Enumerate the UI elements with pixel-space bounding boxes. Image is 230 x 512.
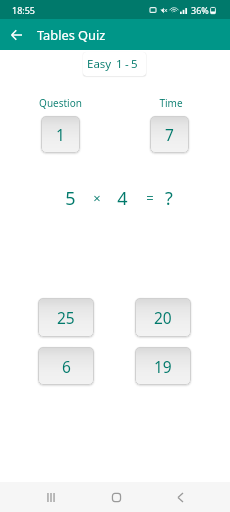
staticText: 1 xyxy=(116,56,123,72)
button[interactable]: Easy xyxy=(83,52,146,76)
staticText: 1 xyxy=(56,124,65,145)
staticText: 19 xyxy=(154,356,172,377)
staticText: Tables Quiz xyxy=(37,26,106,43)
button[interactable]: Recents xyxy=(27,482,75,512)
staticText: Question xyxy=(39,96,82,110)
button[interactable]: Back xyxy=(0,19,32,50)
button[interactable]: 20 xyxy=(135,298,191,337)
button[interactable]: Back xyxy=(156,482,204,512)
staticText: × xyxy=(93,189,101,207)
staticText: 18:55 xyxy=(12,4,36,16)
button[interactable]: 25 xyxy=(38,298,94,337)
button[interactable]: 19 xyxy=(135,347,191,385)
staticText: 5 xyxy=(131,56,138,72)
button[interactable]: 6 xyxy=(38,347,94,385)
button[interactable]: Home xyxy=(92,482,140,512)
staticText: - xyxy=(125,56,129,72)
staticText: Easy xyxy=(87,56,112,72)
staticText: 7 xyxy=(165,124,174,145)
staticText: 36% xyxy=(191,4,209,16)
staticText: 6 xyxy=(62,356,71,377)
staticText: 25 xyxy=(57,307,75,328)
staticText: ? xyxy=(165,186,173,211)
staticText: Time xyxy=(159,96,183,110)
staticText: 20 xyxy=(154,307,172,328)
staticText: 4 xyxy=(117,186,128,211)
staticText: 5 xyxy=(65,186,76,211)
staticText: = xyxy=(146,189,154,207)
